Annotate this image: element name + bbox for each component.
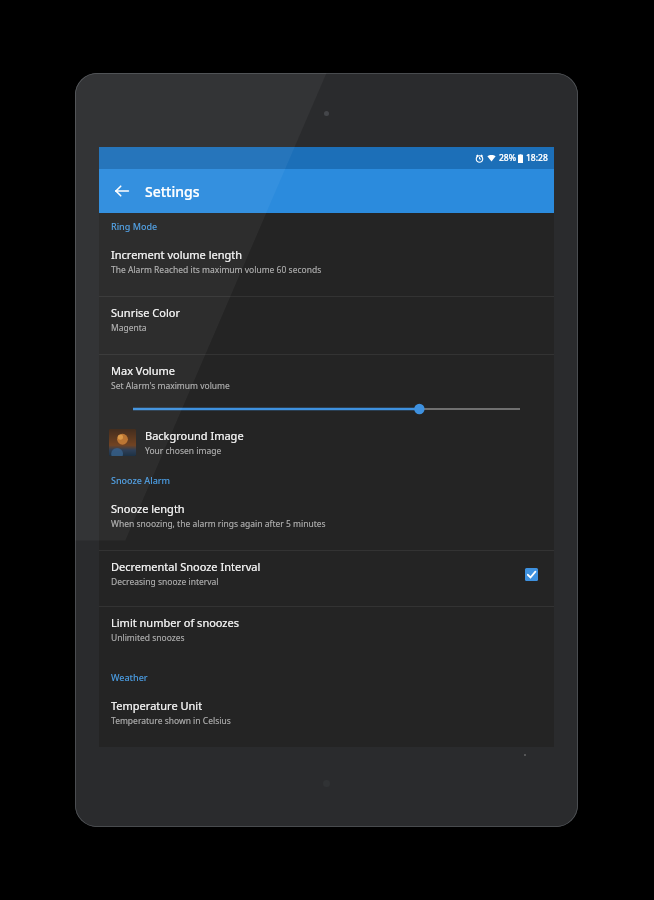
button[interactable]: Sunrise Color: [99, 297, 554, 354]
staticText: Temperature shown in Celsius: [111, 715, 231, 727]
staticText: Increment volume length: [111, 247, 243, 262]
staticText: Snooze length: [111, 501, 185, 516]
button[interactable]: Decremental Snooze Interval: [520, 563, 542, 585]
staticText: Decremental Snooze Interval: [111, 559, 261, 574]
button[interactable]: Max Volume: [99, 355, 554, 426]
staticText: When snoozing, the alarm rings again aft…: [111, 518, 326, 530]
button[interactable]: Snooze length: [99, 493, 554, 550]
staticText: Temperature Unit: [111, 698, 203, 713]
button[interactable]: Back: [107, 176, 137, 206]
button[interactable]: Increment volume length: [99, 239, 554, 296]
staticText: Decreasing snooze interval: [111, 576, 219, 588]
staticText: Unlimited snoozes: [111, 632, 185, 644]
staticText: 28%: [499, 152, 516, 164]
staticText: Sunrise Color: [111, 305, 180, 320]
button[interactable]: Temperature Unit: [99, 690, 554, 747]
staticText: Background Image: [145, 428, 244, 443]
staticText: Set Alarm's maximum volume: [111, 380, 230, 392]
staticText: Limit number of snoozes: [111, 615, 240, 630]
staticText: Ring Mode: [111, 220, 158, 232]
button[interactable]: Limit number of snoozes: [99, 607, 554, 664]
staticText: Max Volume: [111, 363, 175, 378]
staticText: 18:28: [526, 152, 548, 164]
staticText: Weather: [111, 671, 148, 683]
staticText: Settings: [145, 182, 200, 201]
staticText: The Alarm Reached its maximum volume 60 …: [111, 264, 322, 276]
button[interactable]: Background Image: [99, 426, 554, 467]
staticText: Magenta: [111, 322, 147, 334]
staticText: Your chosen image: [145, 445, 222, 457]
staticText: Snooze Alarm: [111, 474, 171, 486]
button[interactable]: Decremental Snooze Interval: [99, 551, 554, 606]
